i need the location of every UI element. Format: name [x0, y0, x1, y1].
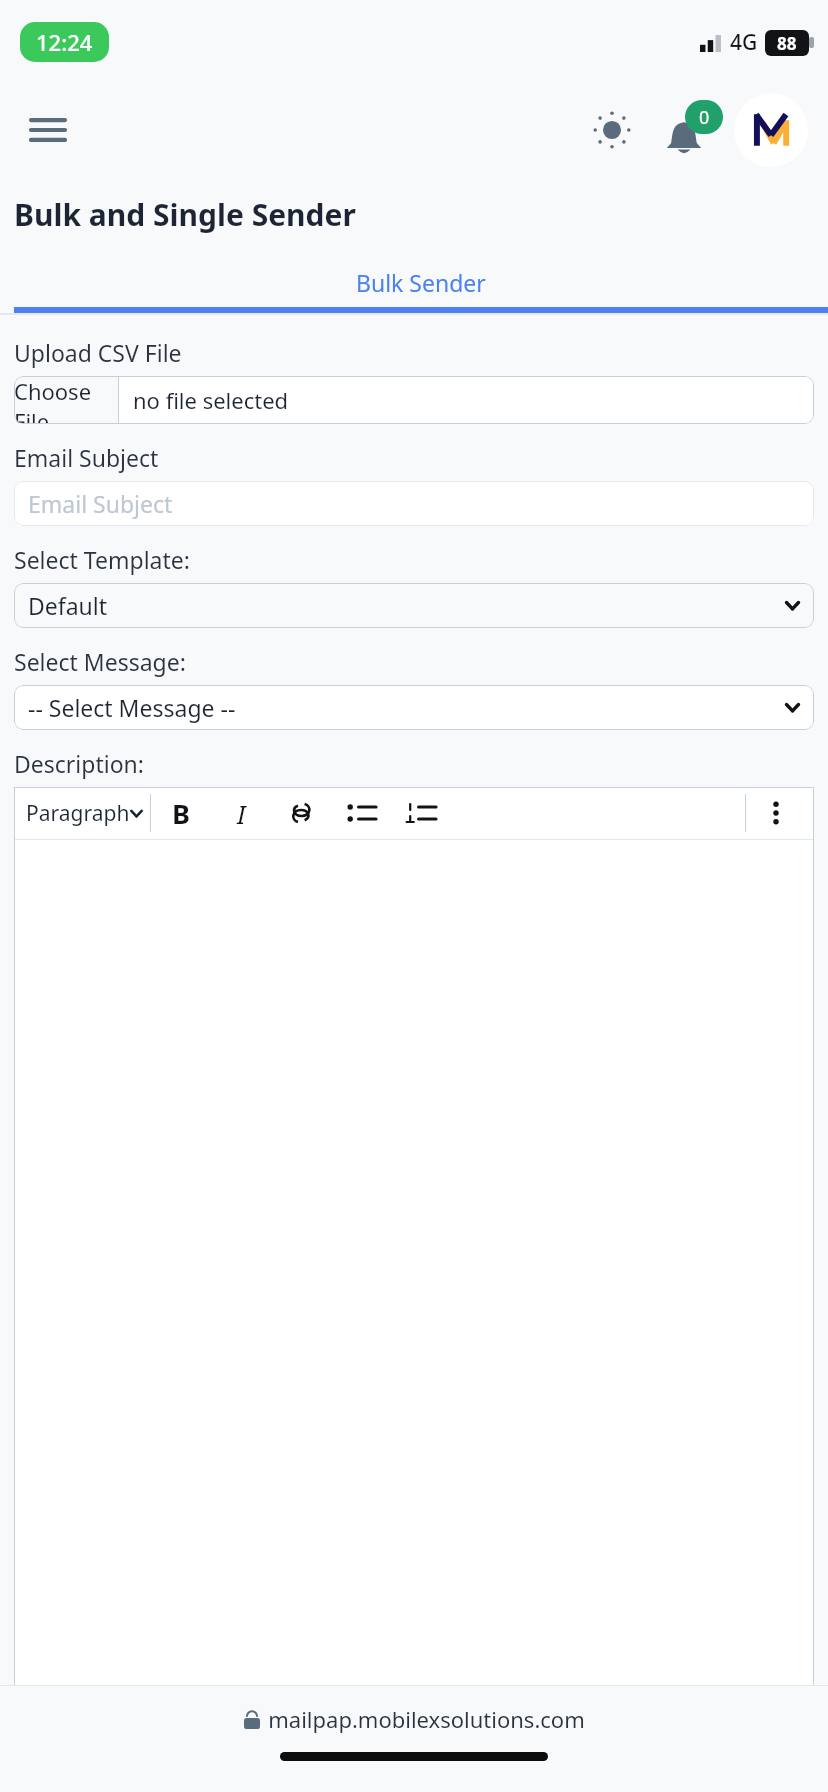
staticText: Default — [28, 590, 108, 621]
staticText: Email Subject — [14, 442, 159, 473]
button[interactable]: Link — [271, 787, 331, 839]
button[interactable]: Account — [734, 93, 808, 167]
staticText: Upload CSV File — [14, 337, 182, 368]
staticText: 4G — [730, 28, 758, 57]
staticText: I — [237, 796, 246, 831]
staticText: -- Select Message -- — [28, 692, 236, 723]
button[interactable]: Italic — [211, 787, 271, 839]
button[interactable]: Email Subject — [14, 481, 814, 526]
button[interactable]: More options — [746, 787, 806, 839]
button[interactable]: Choose File — [14, 376, 814, 424]
button[interactable]: Bulk Sender — [14, 257, 828, 313]
button[interactable]: Bold — [151, 787, 211, 839]
staticText: 0 — [699, 105, 710, 130]
staticText: Select Template: — [14, 544, 190, 575]
button[interactable]: Paragraph — [26, 787, 150, 839]
staticText: Paragraph — [26, 799, 130, 828]
staticText: Select Message: — [14, 646, 186, 677]
staticText: no file selected — [133, 385, 289, 415]
button[interactable]: Bulleted list — [331, 787, 391, 839]
staticText: 12:24 — [36, 27, 93, 57]
button[interactable]: Toggle theme — [586, 104, 638, 156]
staticText: Choose File — [14, 376, 118, 424]
staticText: Bulk and Single Sender — [14, 194, 356, 235]
staticText: 88 — [777, 32, 797, 55]
button[interactable]: Default — [14, 583, 814, 628]
staticText: B — [172, 795, 190, 832]
staticText: Email Subject — [28, 488, 173, 519]
staticText: Description: — [14, 748, 144, 779]
button[interactable]: Menu — [26, 108, 70, 152]
staticText: Bulk Sender — [356, 267, 486, 298]
button[interactable]: Numbered list — [391, 787, 451, 839]
button[interactable]: Notifications — [664, 100, 724, 160]
button[interactable]: -- Select Message -- — [14, 685, 814, 730]
staticText: mailpap.mobilexsolutions.com — [268, 1704, 585, 1734]
